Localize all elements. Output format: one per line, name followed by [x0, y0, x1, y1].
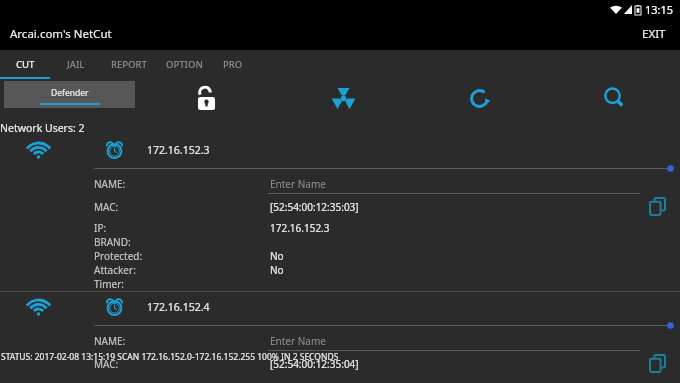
staticText: 172.16.152.3 — [270, 221, 330, 235]
button[interactable]: Wi-Fi device — [21, 292, 55, 321]
staticText: Attacker: — [94, 263, 136, 277]
button[interactable]: Unlock — [188, 80, 224, 116]
button[interactable]: Wi-Fi device — [0, 292, 680, 375]
staticText: Arcai.com's NetCut — [10, 26, 112, 42]
button[interactable]: Timer — [99, 135, 129, 164]
staticText: PRO — [223, 58, 243, 71]
button[interactable]: JAIL — [50, 50, 101, 79]
staticText: NAME: — [94, 177, 126, 191]
button[interactable]: Cut slider — [665, 164, 676, 173]
staticText: MAC: — [94, 200, 119, 214]
button[interactable]: Timer — [99, 292, 129, 321]
button[interactable]: Copy MAC address — [644, 352, 670, 375]
staticText: Network Users: 2 — [0, 121, 85, 135]
staticText: 172.16.152.3 — [147, 143, 210, 157]
staticText: STATUS: 2017-02-08 13:15:19 SCAN 172.16.… — [1, 351, 339, 363]
button[interactable]: Wi-Fi device — [21, 135, 55, 164]
staticText: EXIT — [642, 26, 666, 42]
staticText: MAC: — [94, 357, 119, 371]
button[interactable]: REPORT — [101, 50, 156, 79]
button[interactable]: Search — [596, 80, 632, 116]
staticText: JAIL — [67, 58, 85, 71]
staticText: OPTION — [166, 58, 203, 71]
button[interactable]: PRO — [212, 50, 254, 79]
staticText: [52:54:00:12:35:03] — [270, 200, 359, 214]
button[interactable]: EXIT — [628, 18, 680, 50]
staticText: REPORT — [111, 58, 147, 71]
button[interactable]: Copy MAC address — [644, 195, 670, 218]
button[interactable]: Cut all network — [325, 80, 361, 116]
staticText: CUT — [16, 58, 35, 71]
staticText: 13:15 — [645, 2, 674, 17]
button[interactable]: Refresh — [461, 80, 497, 116]
staticText: No — [270, 263, 284, 277]
staticText: NAME: — [94, 334, 126, 348]
button[interactable]: Cut slider — [665, 321, 676, 330]
staticText: Timer: — [94, 277, 124, 291]
button[interactable]: Wi-Fi device — [0, 135, 680, 291]
button[interactable]: Defender — [4, 81, 135, 108]
staticText: [52:54:00:12:35:04] — [270, 357, 359, 371]
staticText: Enter Name — [270, 177, 326, 191]
staticText: Defender — [51, 87, 89, 99]
staticText: BRAND: — [94, 235, 131, 249]
staticText: IP: — [94, 221, 107, 235]
staticText: Enter Name — [270, 334, 326, 348]
staticText: 172.16.152.4 — [147, 300, 210, 314]
button[interactable]: OPTION — [156, 50, 212, 79]
button[interactable]: CUT — [0, 50, 50, 79]
staticText: Protected: — [94, 249, 143, 263]
staticText: No — [270, 249, 284, 263]
